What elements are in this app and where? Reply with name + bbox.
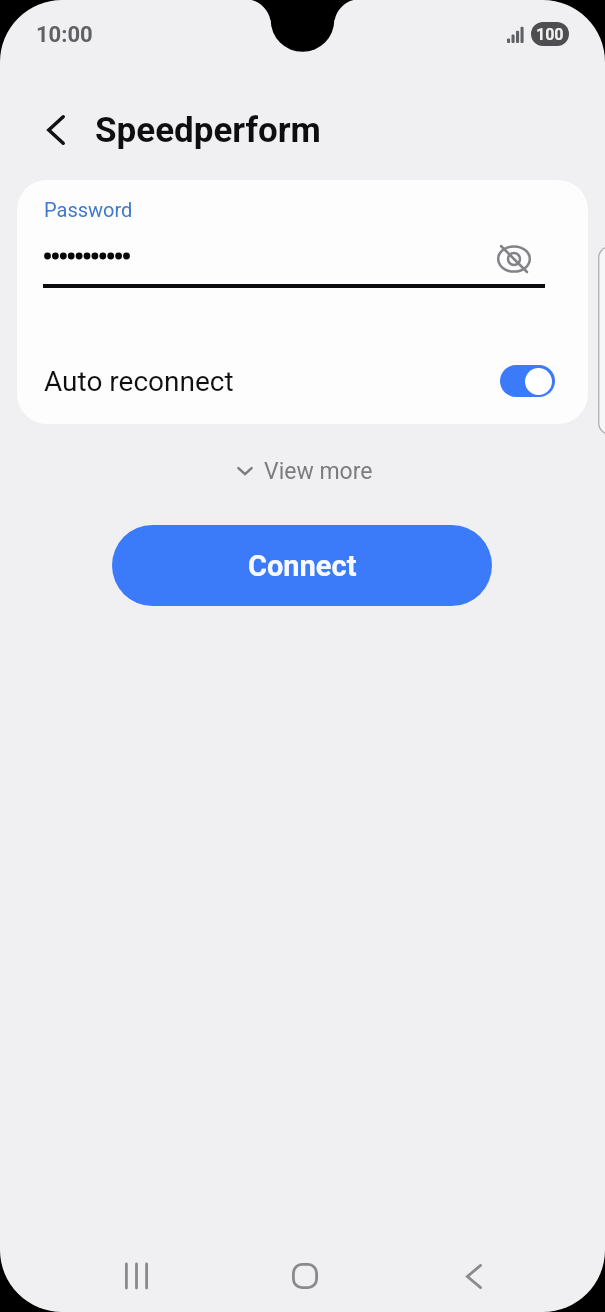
button[interactable]: Home bbox=[265, 1246, 345, 1306]
button[interactable]: Show password bbox=[495, 242, 535, 282]
staticText: Auto reconnect bbox=[44, 365, 500, 398]
staticText: View more bbox=[264, 458, 373, 485]
button[interactable]: Auto reconnect bbox=[17, 348, 588, 414]
staticText: Speedperform bbox=[95, 110, 321, 151]
button[interactable]: View more bbox=[226, 450, 384, 492]
button[interactable]: Connect bbox=[112, 525, 492, 606]
staticText: 100 bbox=[536, 25, 564, 44]
button[interactable]: Back bbox=[434, 1246, 514, 1306]
staticText: 10:00 bbox=[36, 22, 93, 48]
button[interactable]: Password field bbox=[43, 234, 488, 288]
button[interactable]: Recent apps bbox=[96, 1246, 176, 1306]
button[interactable]: Back bbox=[29, 103, 83, 157]
staticText: Password bbox=[44, 198, 133, 221]
staticText: Connect bbox=[248, 549, 357, 583]
button[interactable]: Auto reconnect bbox=[500, 365, 555, 397]
